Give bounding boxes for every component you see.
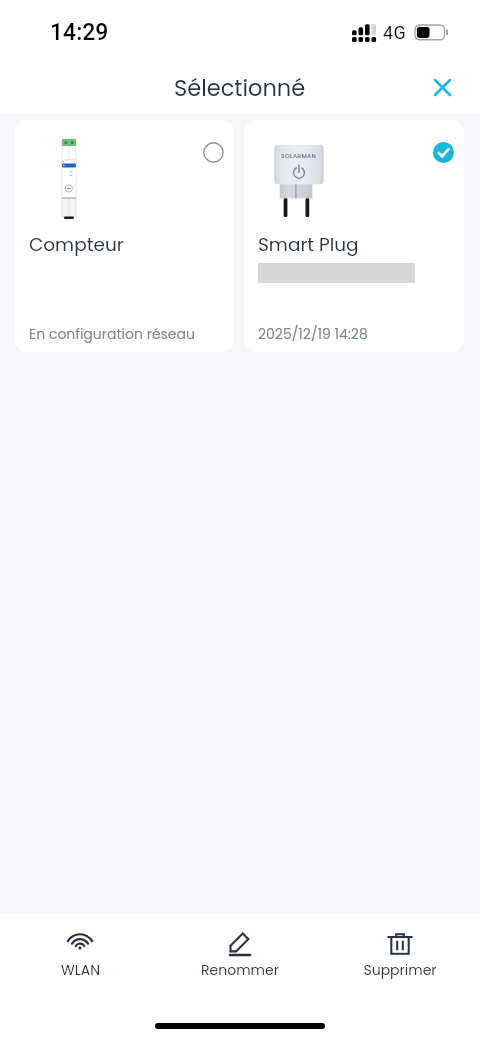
staticText: Sélectionné [174,72,306,103]
other: Renommer [226,929,254,957]
button[interactable]: Sélectionner [15,120,234,352]
button[interactable]: SOLARMAN [244,120,464,352]
staticText: 4G [383,22,407,43]
button[interactable]: Supprimer [320,914,480,980]
other: Supprimer [386,930,414,958]
button[interactable]: WLAN [0,914,160,980]
staticText: SOLARMAN [281,152,317,160]
staticText: Smart Plug [258,232,359,258]
staticText: Renommer [201,960,279,980]
staticText: Supprimer [363,960,437,980]
button[interactable]: Désélectionner [422,131,464,173]
other: WLAN [67,931,93,950]
button[interactable]: Sélectionner [192,131,234,173]
staticText: En configuration réseau [29,324,195,344]
staticText: WLAN [61,960,100,980]
staticText: Compteur [29,232,124,258]
staticText: 2025/12/19 14:28 [258,324,368,344]
staticText: 14:29 [50,19,109,46]
button[interactable]: Fermer [424,71,458,105]
button[interactable]: Renommer [160,914,320,980]
